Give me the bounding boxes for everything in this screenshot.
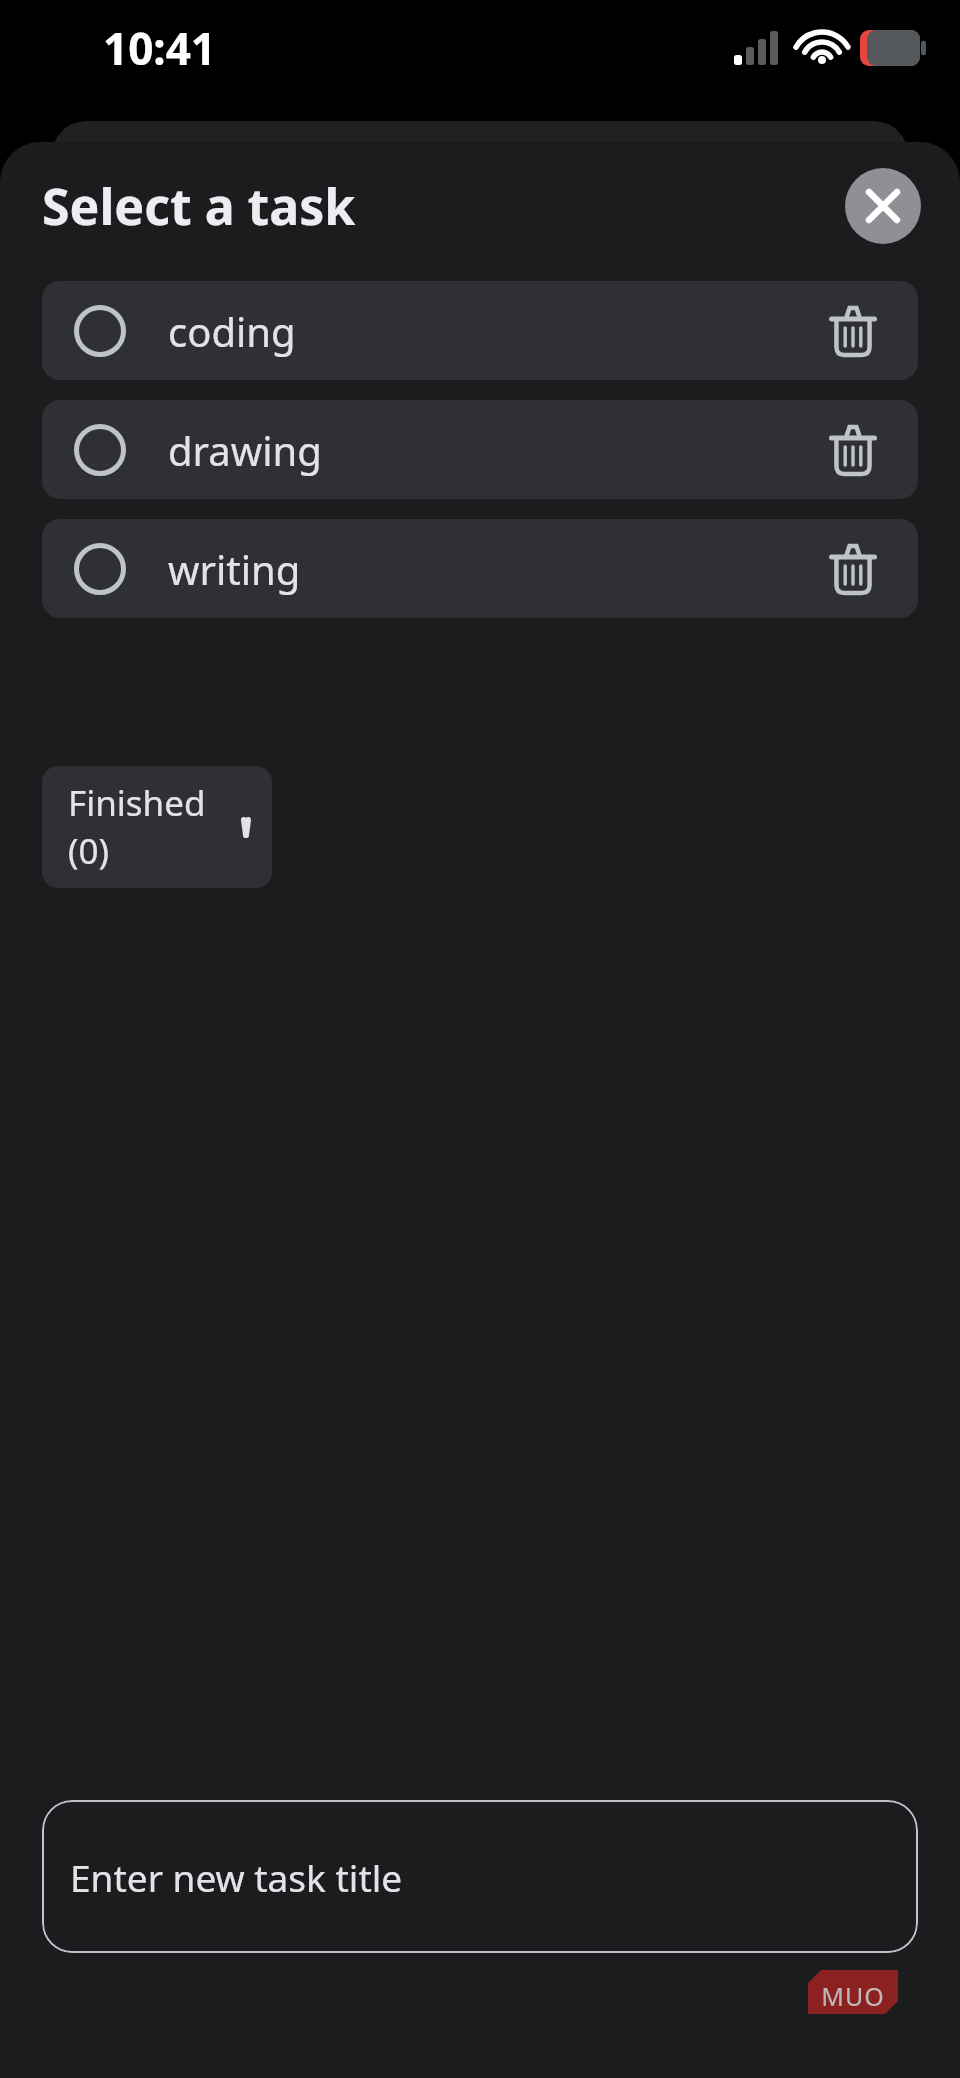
- button[interactable]: Enter new task title: [42, 1800, 918, 1953]
- staticText: writing: [168, 542, 301, 596]
- staticText: Enter new task title: [70, 1852, 403, 1902]
- button[interactable]: coding: [42, 281, 918, 380]
- staticText: MUO: [808, 1979, 898, 2014]
- button[interactable]: Delete drawing: [807, 404, 899, 496]
- button[interactable]: Delete coding: [807, 285, 899, 377]
- staticText: coding: [168, 304, 296, 358]
- button[interactable]: writing: [42, 519, 918, 618]
- staticText: Select a task: [42, 172, 356, 240]
- button[interactable]: drawing: [42, 400, 918, 499]
- button[interactable]: Close: [845, 168, 921, 244]
- staticText: drawing: [168, 423, 322, 477]
- staticText: Finished (0): [68, 779, 246, 875]
- button[interactable]: Delete writing: [807, 523, 899, 615]
- staticText: 10:41: [103, 18, 217, 78]
- button[interactable]: Finished (0): [42, 766, 272, 888]
